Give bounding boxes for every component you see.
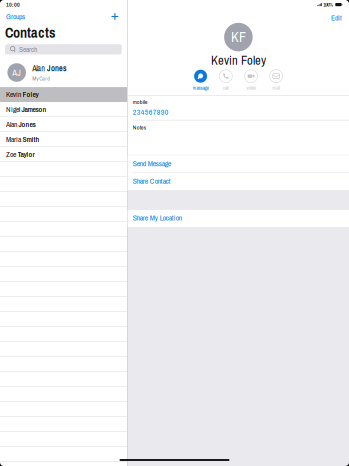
button[interactable]: Nigel — [0, 102, 127, 117]
staticText: mobile — [133, 98, 148, 106]
staticText: Share Contact — [133, 176, 171, 186]
staticText: AJ — [12, 67, 21, 78]
staticText: message — [193, 84, 209, 91]
staticText: Jones — [19, 119, 36, 129]
staticText: Search — [19, 44, 37, 54]
staticText: Contacts — [5, 23, 56, 42]
staticText: Kevin — [6, 89, 21, 99]
staticText: Alan — [32, 63, 45, 74]
staticText: Groups — [6, 11, 25, 22]
button[interactable]: Share My Location — [128, 210, 349, 227]
staticText: Foley — [23, 89, 39, 99]
staticText: Jones — [47, 63, 67, 74]
staticText: Edit — [331, 13, 342, 23]
staticText: Alan — [6, 119, 17, 129]
staticText: mail — [272, 84, 280, 91]
button[interactable]: Add contact — [107, 11, 122, 22]
staticText: Nigel — [6, 104, 20, 114]
button[interactable]: call — [213, 70, 238, 91]
staticText: Taylor — [18, 149, 35, 159]
staticText: Smith — [23, 134, 40, 144]
button[interactable]: Send Message — [128, 155, 349, 172]
staticText: video — [246, 84, 255, 91]
button[interactable]: Edit — [326, 11, 347, 22]
staticText: My Card — [32, 74, 50, 82]
staticText: 234567890 — [133, 107, 169, 117]
staticText: 10:00 — [6, 1, 20, 9]
button[interactable]: Search — [5, 44, 122, 55]
button[interactable]: video — [238, 70, 264, 91]
staticText: Notes — [133, 123, 147, 131]
button[interactable]: message — [188, 70, 213, 91]
staticText: Share My Location — [133, 213, 182, 223]
staticText: 100% — [323, 1, 333, 8]
button[interactable]: Alan — [0, 117, 127, 132]
staticText: Kevin Foley — [211, 52, 266, 69]
staticText: KF — [231, 28, 246, 46]
button[interactable]: Zoe — [0, 147, 127, 162]
button[interactable]: Kevin — [0, 87, 127, 102]
button[interactable]: mail — [264, 70, 289, 91]
button[interactable]: Maria — [0, 132, 127, 147]
staticText: call — [223, 84, 229, 91]
staticText: Jameson — [22, 104, 47, 114]
button[interactable]: Groups — [0, 11, 28, 22]
button[interactable]: Share Contact — [128, 173, 349, 190]
staticText: Maria — [6, 134, 21, 144]
staticText: Zoe — [6, 149, 16, 159]
staticText: Send Message — [133, 158, 171, 168]
button[interactable]: AJ — [0, 55, 127, 87]
